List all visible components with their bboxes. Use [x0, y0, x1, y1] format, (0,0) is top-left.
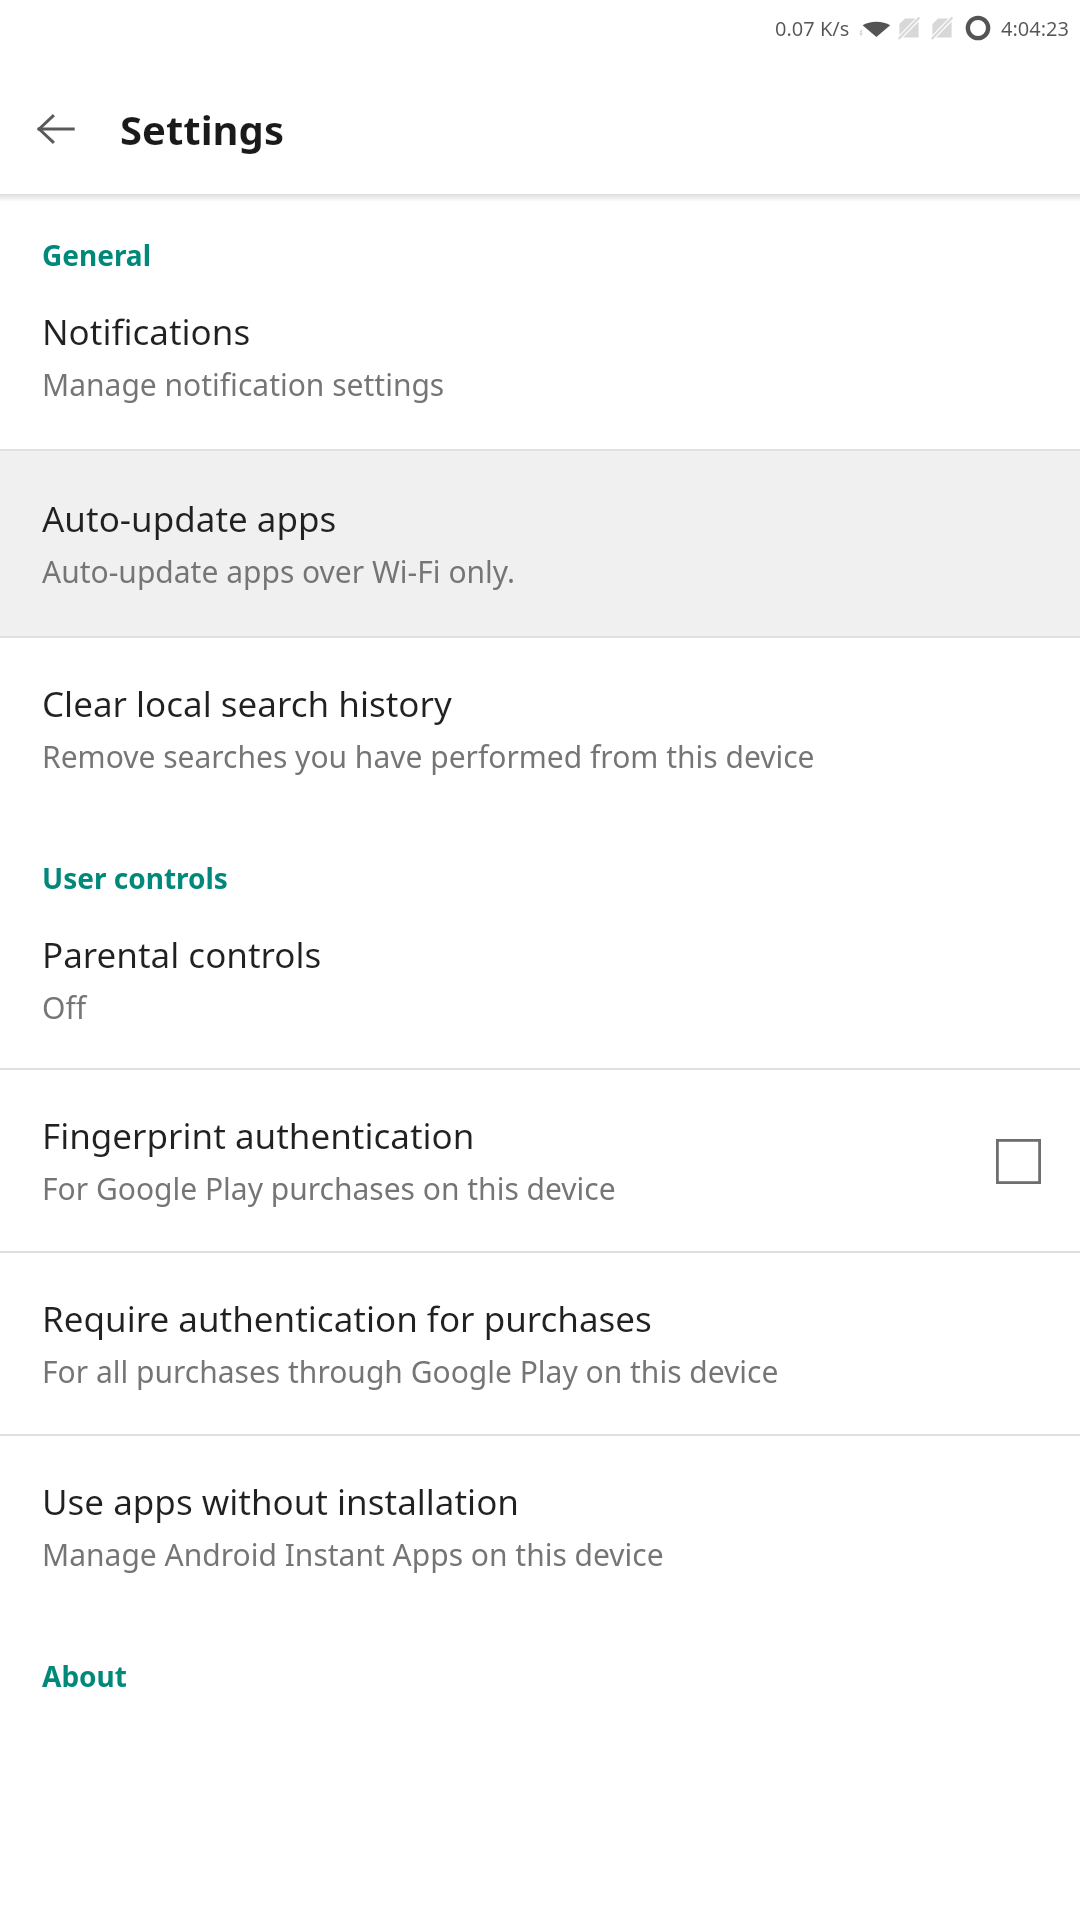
button[interactable]: Fingerprint authentication checkbox: [990, 1133, 1046, 1189]
staticText: Manage notification settings: [42, 364, 445, 405]
staticText: 4:04:23: [1001, 15, 1069, 42]
button[interactable]: Notifications: [0, 308, 1080, 449]
button[interactable]: Use apps without installation: [0, 1436, 1080, 1617]
staticText: Auto-update apps: [42, 495, 337, 543]
button[interactable]: Back: [22, 95, 90, 163]
staticText: Use apps without installation: [42, 1478, 519, 1526]
staticText: User controls: [42, 859, 228, 897]
staticText: Require authentication for purchases: [42, 1295, 652, 1343]
staticText: Settings: [120, 102, 284, 156]
button[interactable]: Auto-update apps: [0, 451, 1080, 636]
staticText: Manage Android Instant Apps on this devi…: [42, 1534, 664, 1575]
staticText: Off: [42, 987, 87, 1028]
staticText: Remove searches you have performed from …: [42, 736, 815, 777]
button[interactable]: Clear local search history: [0, 638, 1080, 817]
button[interactable]: Fingerprint authentication: [0, 1070, 1080, 1251]
staticText: Fingerprint authentication: [42, 1112, 475, 1160]
staticText: For all purchases through Google Play on…: [42, 1351, 779, 1392]
button[interactable]: Parental controls: [0, 931, 1080, 1068]
staticText: About: [42, 1657, 127, 1695]
staticText: For Google Play purchases on this device: [42, 1168, 616, 1209]
button[interactable]: Require authentication for purchases: [0, 1253, 1080, 1434]
staticText: Clear local search history: [42, 680, 452, 728]
staticText: 0.07 K/s: [775, 15, 850, 42]
staticText: Auto-update apps over Wi-Fi only.: [42, 551, 515, 592]
staticText: Parental controls: [42, 931, 322, 979]
staticText: General: [42, 236, 151, 274]
staticText: Notifications: [42, 308, 251, 356]
